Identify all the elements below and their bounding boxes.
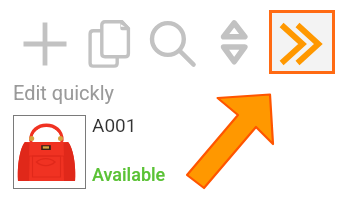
button[interactable]: Next (269, 10, 335, 74)
staticText: Available (92, 164, 166, 185)
button[interactable]: Add (22, 21, 68, 67)
staticText: Edit quickly (13, 81, 115, 104)
button[interactable]: Sort (216, 16, 252, 68)
staticText: A001 (92, 114, 137, 136)
button[interactable]: Search (146, 16, 200, 70)
button[interactable]: Copy (88, 16, 136, 64)
